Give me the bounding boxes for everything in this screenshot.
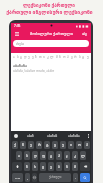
button[interactable]: ვ <box>32 55 34 59</box>
staticText: ბ <box>58 165 60 169</box>
button[interactable]: ო <box>76 141 82 149</box>
staticText: ზ <box>26 165 28 169</box>
staticText: კ <box>74 154 76 158</box>
staticText: 7:35 <box>14 24 21 28</box>
button[interactable]: გ <box>48 151 54 160</box>
button[interactable]: აბაზ <box>20 131 41 140</box>
button[interactable]: ზ <box>35 55 37 59</box>
staticText: ს <box>26 154 28 158</box>
button[interactable]: რ <box>74 55 77 59</box>
staticText: ტ <box>46 143 49 147</box>
button[interactable]: ვ <box>48 162 54 171</box>
button[interactable]: ა <box>16 151 22 160</box>
staticText: ნ <box>66 165 68 169</box>
button[interactable]: ს <box>24 151 30 160</box>
staticText: ა <box>18 154 20 158</box>
staticText: ი <box>70 143 72 147</box>
staticText: მობილური ქართული <box>30 31 73 37</box>
button[interactable]: Google <box>11 131 20 140</box>
staticText: ძიება <box>16 42 25 46</box>
button[interactable]: ი <box>43 55 45 59</box>
staticText: გ <box>50 154 53 158</box>
staticText: აბც <box>82 32 87 35</box>
staticText: ვ <box>50 165 52 169</box>
button[interactable]: ?123 <box>12 173 23 182</box>
button[interactable]: Shift <box>12 162 22 171</box>
button[interactable]: პ <box>67 55 69 59</box>
button[interactable]: ხ <box>32 162 38 171</box>
button[interactable]: აბაზან <box>41 131 63 140</box>
button[interactable]: ჟ <box>71 55 73 59</box>
button[interactable]: ტ <box>82 55 85 59</box>
staticText: ?123 <box>15 176 21 179</box>
staticText: ქ <box>14 143 16 147</box>
button[interactable]: ჰ <box>56 151 62 160</box>
staticText: დ <box>34 154 37 158</box>
button[interactable]: ჯ <box>64 151 70 160</box>
button[interactable]: ლ <box>50 55 54 59</box>
button[interactable]: დ <box>24 55 27 59</box>
button[interactable]: პ <box>84 141 90 149</box>
button[interactable]: ც <box>40 162 46 171</box>
button[interactable]: ე <box>28 141 34 149</box>
staticText: ე <box>30 143 32 147</box>
staticText: ფ <box>42 154 45 158</box>
button[interactable]: აბაზანა <box>63 131 85 140</box>
staticText: ლექსიკონი ქართული <box>23 2 75 8</box>
button[interactable]: ა <box>13 55 15 59</box>
button[interactable]: ბ <box>17 55 19 59</box>
button[interactable]: ლ <box>80 151 86 160</box>
button[interactable]: კ <box>72 151 78 160</box>
button[interactable]: Translate <box>80 29 89 38</box>
button[interactable]: კ <box>47 55 49 59</box>
button[interactable]: ქართული <box>39 173 71 182</box>
button[interactable]: დ <box>32 151 38 160</box>
button[interactable]: ძიება <box>13 40 89 47</box>
staticText: აბაზ <box>27 134 34 138</box>
button[interactable]: ნ <box>59 55 61 59</box>
button[interactable]: რ <box>36 141 42 149</box>
staticText: ო <box>78 143 81 147</box>
button[interactable]: Backspace <box>80 162 90 171</box>
button[interactable]: თ <box>39 55 42 59</box>
button[interactable]: ფ <box>40 151 46 160</box>
button[interactable]: წ <box>20 141 26 149</box>
staticText: წ <box>22 143 24 147</box>
button[interactable]: More options <box>85 131 91 140</box>
staticText: მ <box>74 165 76 169</box>
button[interactable]: Emoji <box>32 173 37 182</box>
button[interactable]: უ <box>60 141 66 149</box>
button[interactable]: ქ <box>12 141 18 149</box>
staticText: აბაზანა <box>68 134 80 138</box>
button[interactable]: ო <box>63 55 66 59</box>
button[interactable]: ე <box>28 55 30 59</box>
staticText: ც <box>42 165 45 169</box>
staticText: აბაზანა, საბანაო ოთახი, აბანო <box>13 69 55 73</box>
button[interactable]: Menu <box>13 29 21 38</box>
button[interactable]: , <box>25 173 30 182</box>
staticText: აბაზანა <box>13 64 28 68</box>
staticText: რ <box>38 143 41 147</box>
button[interactable]: ბ <box>56 162 62 171</box>
staticText: აბაზან <box>47 134 58 138</box>
button[interactable]: უ <box>87 55 89 59</box>
staticText: ქართული <box>49 176 62 179</box>
button[interactable]: ყ <box>52 141 58 149</box>
button[interactable]: მ <box>56 55 58 59</box>
button[interactable]: ს <box>79 55 81 59</box>
button[interactable]: ზ <box>24 162 30 171</box>
button[interactable]: გ <box>20 55 22 59</box>
staticText: ლ <box>81 154 85 158</box>
staticText: ხ <box>34 165 36 169</box>
button[interactable]: Search <box>80 173 90 182</box>
button[interactable]: ტ <box>44 141 50 149</box>
staticText: , <box>27 176 28 180</box>
staticText: ჰ <box>58 154 60 158</box>
button[interactable]: აბაზანა <box>11 64 91 73</box>
button[interactable]: . <box>73 173 78 182</box>
staticText: ქართული ინგლისური ლექსიკონი <box>6 9 93 16</box>
button[interactable]: ი <box>68 141 74 149</box>
button[interactable]: მ <box>72 162 78 171</box>
button[interactable]: ნ <box>64 162 70 171</box>
staticText: პ <box>86 143 88 147</box>
